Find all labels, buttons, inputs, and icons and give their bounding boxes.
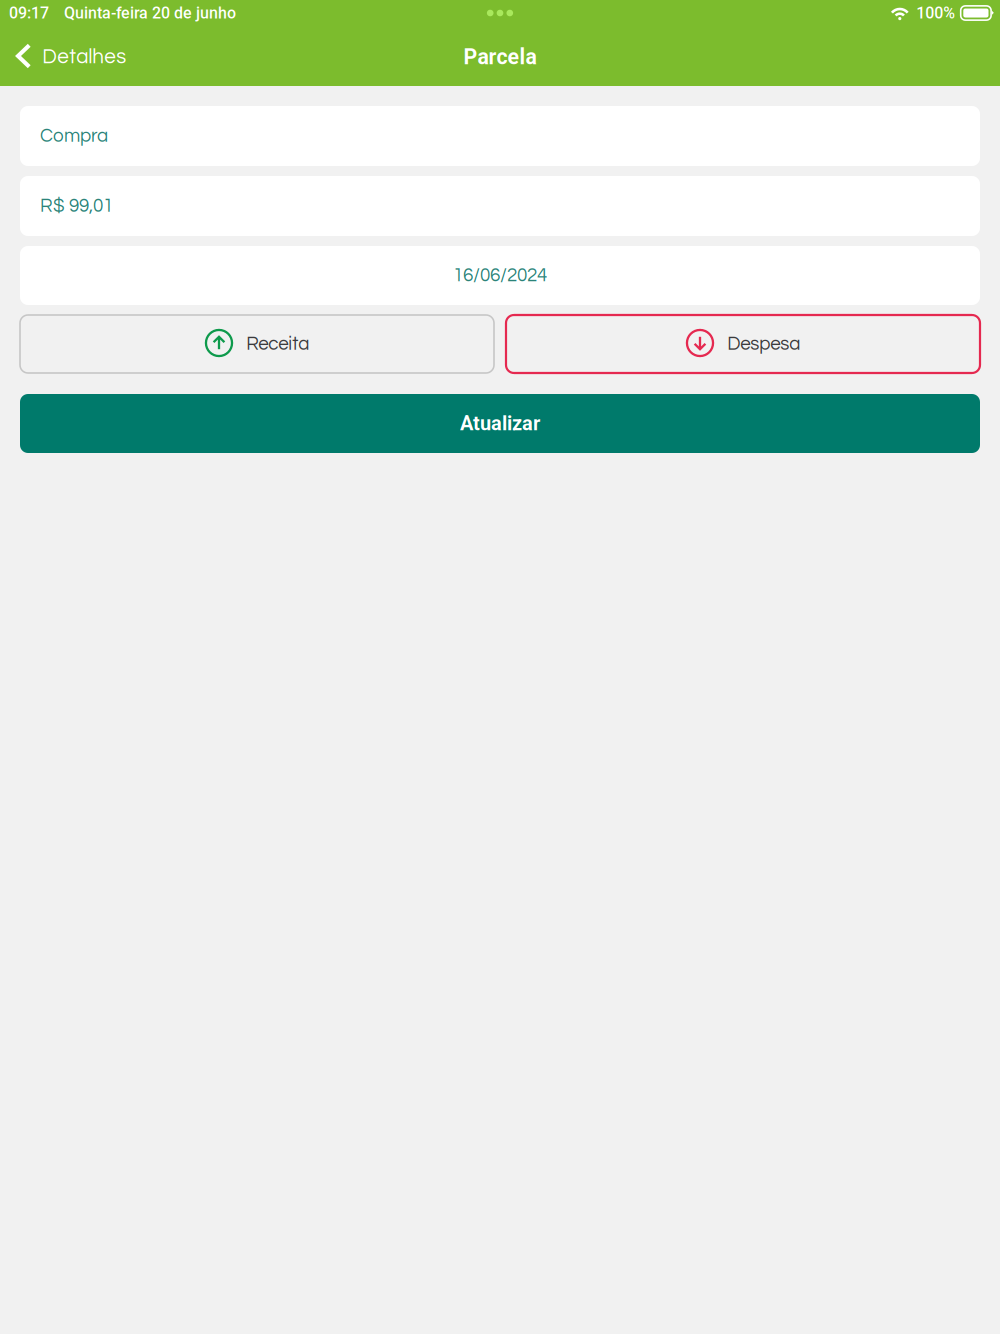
staticText: 100% xyxy=(916,4,955,22)
button[interactable]: Detalhes xyxy=(0,28,138,84)
staticText: Parcela xyxy=(463,44,536,69)
staticText: Compra xyxy=(40,126,108,146)
button[interactable]: Atualizar xyxy=(20,394,980,453)
button[interactable]: Receita xyxy=(20,315,494,373)
staticText: Atualizar xyxy=(460,412,540,435)
staticText: 16/06/2024 xyxy=(453,266,547,285)
staticText: Detalhes xyxy=(42,46,126,68)
button[interactable]: Despesa xyxy=(506,315,980,373)
staticText: Receita xyxy=(246,334,309,354)
staticText: 09:17 xyxy=(9,4,49,22)
staticText: Quinta-feira 20 de junho xyxy=(64,4,236,22)
staticText: R$ 99,01 xyxy=(40,196,113,216)
button[interactable]: 16/06/2024 xyxy=(20,246,980,305)
staticText: Despesa xyxy=(727,334,800,354)
